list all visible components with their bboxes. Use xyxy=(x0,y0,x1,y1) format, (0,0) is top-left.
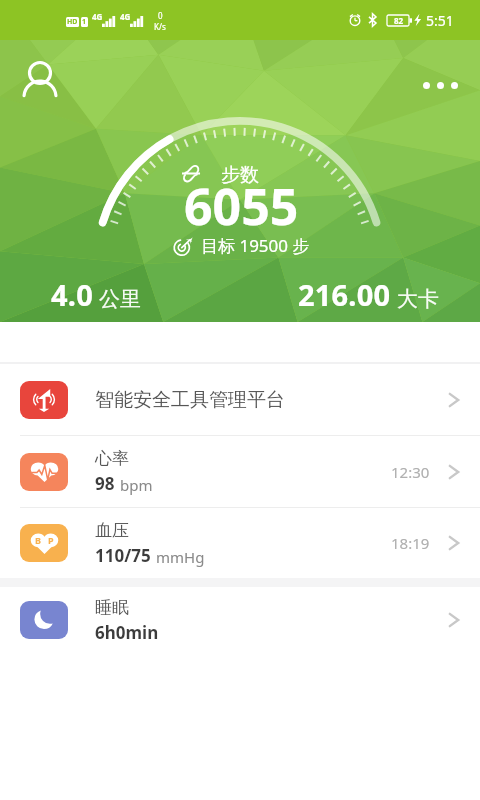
staticText: 216.00 xyxy=(298,275,391,314)
staticText: 血压 xyxy=(95,520,129,541)
staticText: 82 xyxy=(394,15,404,26)
staticText: 4.0 xyxy=(51,275,93,314)
button[interactable]: 心率 xyxy=(0,436,480,508)
staticText: P xyxy=(48,534,54,546)
button[interactable]: B xyxy=(0,508,480,578)
button[interactable]: 智能安全工具管理平台 xyxy=(0,364,480,436)
staticText: B xyxy=(35,534,41,546)
staticText: 心率 xyxy=(95,448,129,469)
staticText: 110/75 xyxy=(95,544,151,567)
button[interactable]: More options xyxy=(418,70,462,100)
staticText: 智能安全工具管理平台 xyxy=(95,388,285,412)
staticText: 4G xyxy=(92,11,103,22)
staticText: 5:51 xyxy=(426,11,454,30)
staticText: 目标 19500 步 xyxy=(201,234,310,257)
staticText: 公里 xyxy=(99,286,141,312)
staticText: 步数 xyxy=(221,163,259,187)
staticText: 12:30 xyxy=(391,462,430,482)
staticText: 0 xyxy=(158,10,163,21)
staticText: 1 xyxy=(82,17,87,27)
staticText: mmHg xyxy=(156,547,205,567)
staticText: 18:19 xyxy=(391,533,430,553)
staticText: 大卡 xyxy=(397,286,439,312)
staticText: 98 xyxy=(95,472,115,495)
staticText: 6h0min xyxy=(95,621,159,644)
button[interactable]: Profile xyxy=(18,58,62,102)
staticText: 睡眠 xyxy=(95,597,129,618)
staticText: 4G xyxy=(120,11,131,22)
button[interactable]: 睡眠 xyxy=(0,587,480,653)
staticText: 6055 xyxy=(184,172,299,240)
staticText: HD xyxy=(67,17,78,27)
staticText: K/s xyxy=(154,21,166,32)
staticText: bpm xyxy=(120,475,153,495)
